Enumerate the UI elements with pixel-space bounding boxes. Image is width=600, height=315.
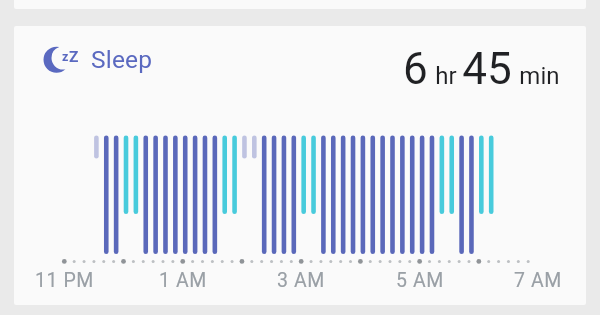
staticText: 3 AM (277, 269, 325, 292)
other: Sleep (40, 42, 82, 78)
staticText: 7 AM (514, 269, 562, 292)
staticText: z (62, 49, 69, 64)
button[interactable]: Sleep (14, 26, 586, 305)
staticText: 5 AM (396, 269, 444, 292)
staticText: 6 hr 45 min (403, 43, 560, 95)
staticText: 11 PM (35, 269, 94, 292)
staticText: 1 AM (159, 269, 207, 292)
staticText: Z (69, 48, 79, 66)
staticText: Sleep (91, 45, 153, 74)
